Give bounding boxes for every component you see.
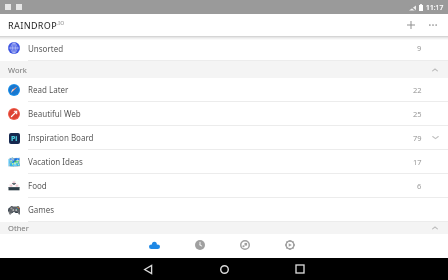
staticText: Other [8,223,29,233]
staticText: 🗺 [8,156,20,168]
button[interactable]: Add collection [401,15,421,35]
staticText: Inspiration Board [28,132,94,143]
staticText: Beautiful Web [28,108,81,119]
button[interactable]: Recent apps [276,258,324,280]
staticText: .IO [57,20,65,27]
staticText: 9 [417,43,422,53]
staticText: 17 [413,157,422,167]
button[interactable]: More options [423,15,443,35]
button[interactable]: Work [0,61,448,78]
button[interactable]: Other [0,222,448,234]
button[interactable]: Beautiful Web [0,102,448,125]
staticText: Read Later [28,84,69,95]
staticText: Unsorted [28,43,64,54]
button[interactable]: Filters [222,234,267,256]
staticText: 6 [417,181,422,191]
button[interactable]: Collections [132,234,177,256]
button[interactable]: Pi [0,126,448,149]
button[interactable]: Settings [267,234,312,256]
button[interactable]: Recent [177,234,222,256]
button[interactable]: Back [124,258,172,280]
staticText: 25 [413,109,422,119]
staticText: Food [28,180,47,191]
button[interactable]: Home [200,258,248,280]
button[interactable]: Read Later [0,78,448,101]
staticText: Games [28,204,55,215]
button[interactable]: Food [0,174,448,197]
button[interactable]: Unsorted [0,36,448,60]
staticText: Work [8,65,27,75]
staticText: 🎮 [8,204,20,216]
button[interactable]: 🎮 [0,198,448,221]
staticText: RAINDROP [8,19,57,31]
staticText: Vacation Ideas [28,156,83,167]
staticText: Pi [11,134,18,144]
staticText: 22 [413,85,422,95]
staticText: 79 [413,133,422,143]
staticText: 11:17 [426,3,444,12]
button[interactable]: 🗺 [0,150,448,173]
